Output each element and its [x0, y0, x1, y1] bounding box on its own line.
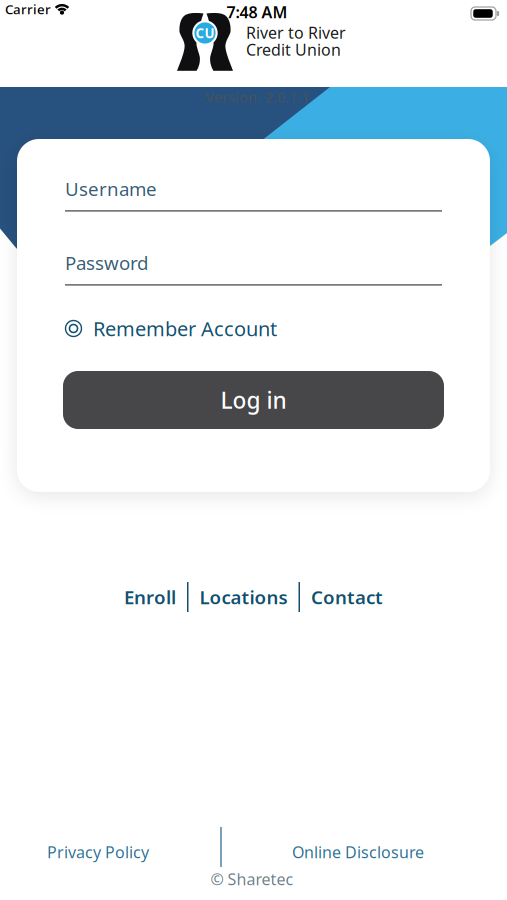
button[interactable]: Username [65, 176, 442, 212]
button[interactable]: Password [65, 250, 442, 286]
staticText: Credit Union [246, 39, 341, 60]
button[interactable]: Remember Account [65, 315, 442, 342]
button[interactable]: Enroll [124, 585, 176, 609]
staticText: Carrier [5, 0, 51, 18]
staticText: Privacy Policy [47, 841, 149, 863]
staticText: Contact [311, 585, 383, 609]
button[interactable]: Online Disclosure [292, 841, 424, 863]
staticText: Version: 2.0.1.1 [205, 87, 309, 107]
staticText: Log in [220, 385, 286, 415]
staticText: Locations [199, 585, 287, 609]
staticText: Password [65, 250, 148, 275]
staticText: CU [195, 24, 214, 42]
staticText: Online Disclosure [292, 841, 424, 863]
staticText: Remember Account [93, 315, 277, 342]
staticText: Username [65, 176, 157, 201]
staticText: © Sharetec [210, 868, 293, 890]
button[interactable]: Privacy Policy [47, 841, 149, 863]
button[interactable]: Locations [199, 585, 287, 609]
button[interactable]: Contact [311, 585, 383, 609]
button[interactable]: Log in [63, 371, 444, 429]
staticText: River to River [246, 22, 346, 43]
staticText: 7:48 AM [226, 1, 287, 23]
staticText: Enroll [124, 585, 176, 609]
